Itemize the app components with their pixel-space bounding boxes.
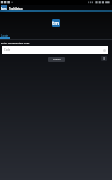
button[interactable]: Code [2, 46, 108, 54]
staticText: Submit [53, 58, 61, 61]
button[interactable]: bm [0, 5, 112, 11]
staticText: ToolsSetup [9, 7, 23, 10]
staticText: tm [52, 20, 60, 27]
staticText: Enter Configuration Code [1, 42, 30, 45]
staticText: bm [1, 6, 7, 11]
button[interactable]: Clear text [103, 49, 106, 52]
button[interactable]: Submit [48, 57, 65, 62]
staticText: Code [4, 48, 11, 52]
staticText: Login [1, 34, 9, 38]
button[interactable]: Login [0, 32, 11, 39]
button[interactable]: Options [101, 56, 107, 61]
button[interactable]: App logo [52, 19, 60, 27]
